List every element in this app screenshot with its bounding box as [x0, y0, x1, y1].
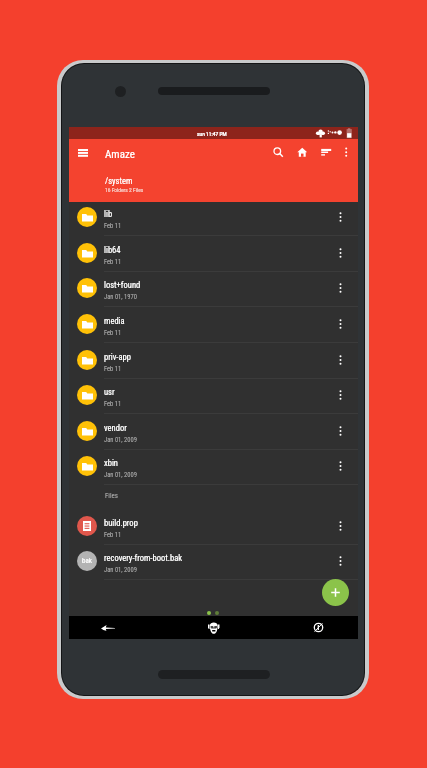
button[interactable]: Item options [328, 383, 352, 407]
staticText: /system [105, 176, 133, 186]
staticText: Feb 11 [104, 258, 122, 266]
staticText: Amaze [105, 148, 135, 161]
button[interactable]: Search [268, 142, 289, 163]
staticText: Feb 11 [104, 222, 122, 230]
button[interactable]: lost+found [69, 270, 358, 306]
staticText: recovery-from-boot.bak [104, 553, 183, 563]
button[interactable]: lib64 [69, 235, 358, 271]
button[interactable]: Back [84, 616, 132, 639]
button[interactable]: Recents [294, 616, 343, 639]
staticText: sun 11:47 PM [197, 131, 227, 137]
staticText: Files [105, 492, 119, 500]
button[interactable]: priv-app [69, 342, 358, 378]
staticText: vendor [104, 423, 127, 433]
button[interactable]: vendor [69, 413, 358, 449]
button[interactable]: bak [69, 543, 358, 579]
button[interactable]: Item options [328, 419, 352, 443]
button[interactable]: Add [322, 579, 349, 606]
button[interactable]: media [69, 306, 358, 342]
button[interactable]: Item options [328, 454, 352, 478]
staticText: Feb 11 [104, 329, 122, 337]
staticText: lib [104, 209, 113, 219]
staticText: Jan 01, 2009 [104, 471, 137, 479]
button[interactable]: usr [69, 377, 358, 413]
button[interactable]: build.prop [69, 508, 358, 544]
staticText: bak [82, 557, 92, 565]
button[interactable]: Item options [328, 241, 352, 265]
staticText: Feb 11 [104, 531, 122, 539]
button[interactable]: Home [292, 142, 313, 163]
button[interactable]: Open navigation drawer [72, 142, 93, 163]
staticText: Jan 01, 1970 [104, 293, 137, 301]
button[interactable]: Item options [328, 205, 352, 229]
staticText: usr [104, 387, 115, 397]
staticText: priv-app [104, 352, 131, 362]
staticText: lib64 [104, 245, 121, 255]
button[interactable]: Item options [328, 312, 352, 336]
staticText: build.prop [104, 518, 138, 528]
staticText: 16 Folders 2 Files [105, 187, 144, 193]
staticText: lost+found [104, 280, 141, 290]
button[interactable]: xbin [69, 448, 358, 484]
button[interactable]: Item options [328, 348, 352, 372]
button[interactable]: More options [336, 142, 357, 163]
staticText: xbin [104, 458, 118, 468]
staticText: Jan 01, 2009 [104, 566, 137, 574]
button[interactable]: lib [69, 199, 358, 235]
button[interactable]: Sort [316, 142, 337, 163]
button[interactable]: Item options [328, 276, 352, 300]
staticText: media [104, 316, 125, 326]
staticText: Jan 01, 2009 [104, 436, 137, 444]
staticText: Feb 11 [104, 365, 122, 373]
button[interactable]: Item options [328, 514, 352, 538]
button[interactable]: Item options [328, 549, 352, 573]
staticText: Feb 11 [104, 400, 122, 408]
button[interactable]: Home [189, 616, 238, 639]
